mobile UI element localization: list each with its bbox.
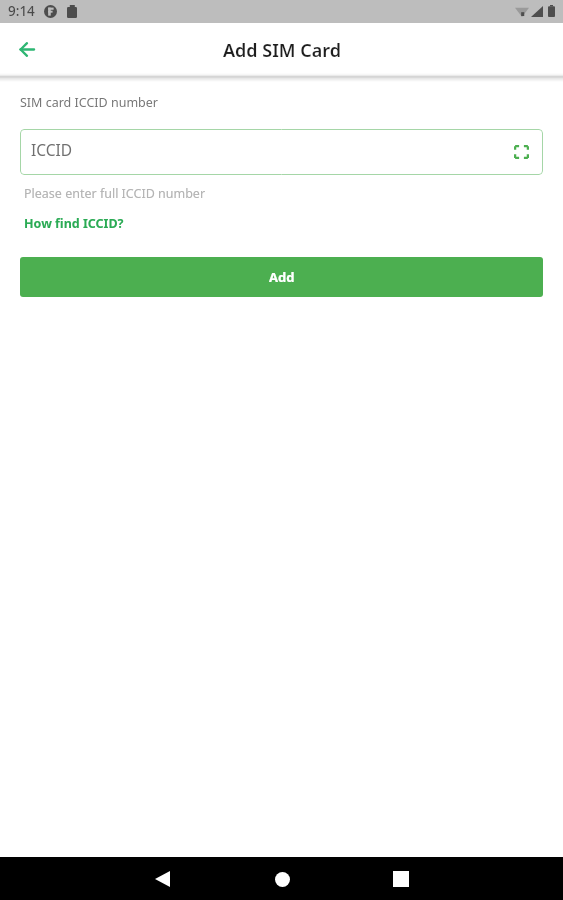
button[interactable]: Back — [7, 30, 47, 70]
button[interactable]: Recent apps — [381, 859, 421, 899]
button[interactable]: Back — [142, 859, 182, 899]
staticText: How find ICCID? — [24, 215, 124, 232]
button[interactable]: Home — [262, 859, 302, 899]
button[interactable]: Add — [20, 257, 543, 297]
staticText: Please enter full ICCID number — [24, 185, 206, 202]
button[interactable]: ICCID — [20, 129, 543, 175]
staticText: Add SIM Card — [223, 38, 342, 63]
staticText: ICCID — [31, 139, 73, 160]
button[interactable]: How find ICCID? — [24, 215, 124, 232]
staticText: SIM card ICCID number — [20, 94, 158, 111]
staticText: Add — [269, 268, 295, 286]
staticText: 9:14 — [8, 2, 35, 20]
button[interactable]: Scan ICCID barcode — [510, 141, 532, 163]
